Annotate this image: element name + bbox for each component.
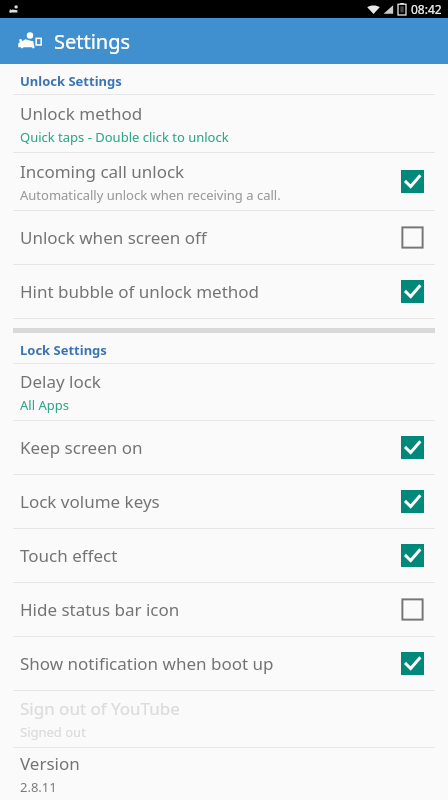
- button[interactable]: Hint bubble of unlock method: [0, 265, 448, 318]
- staticText: Signed out: [20, 723, 86, 741]
- staticText: Automatically unlock when receiving a ca…: [20, 186, 281, 204]
- button[interactable]: Hide status bar icon: [0, 583, 448, 636]
- staticText: Incoming call unlock: [20, 160, 185, 183]
- button[interactable]: Touch effect: [0, 529, 448, 582]
- button[interactable]: Lock volume keys: [0, 475, 448, 528]
- button[interactable]: Keep screen on: [0, 421, 448, 474]
- button[interactable]: Sign out of YouTube: [0, 691, 448, 747]
- staticText: Delay lock: [20, 370, 101, 393]
- staticText: Show notification when boot up: [20, 652, 274, 675]
- staticText: Hide status bar icon: [20, 598, 180, 621]
- other: App icon: [16, 30, 44, 52]
- staticText: Unlock when screen off: [20, 226, 207, 249]
- staticText: Touch effect: [20, 544, 118, 567]
- staticText: Lock Settings: [20, 341, 107, 359]
- staticText: 08:42: [411, 1, 442, 17]
- button[interactable]: Show notification when boot up: [0, 637, 448, 690]
- staticText: Hint bubble of unlock method: [20, 280, 260, 303]
- button[interactable]: Unlock when screen off: [0, 211, 448, 264]
- staticText: Keep screen on: [20, 436, 143, 459]
- staticText: Settings: [54, 28, 131, 55]
- staticText: Lock volume keys: [20, 490, 160, 513]
- staticText: Unlock Settings: [20, 72, 122, 90]
- staticText: 2.8.11: [20, 778, 57, 796]
- staticText: All Apps: [20, 396, 69, 414]
- staticText: Unlock method: [20, 102, 143, 125]
- staticText: Sign out of YouTube: [20, 697, 180, 720]
- button[interactable]: Delay lock: [0, 364, 448, 420]
- button[interactable]: Incoming call unlock: [0, 153, 448, 210]
- button[interactable]: Unlock method: [0, 95, 448, 152]
- button[interactable]: Version: [0, 748, 448, 800]
- staticText: Quick taps - Double click to unlock: [20, 128, 229, 146]
- staticText: Version: [20, 752, 80, 775]
